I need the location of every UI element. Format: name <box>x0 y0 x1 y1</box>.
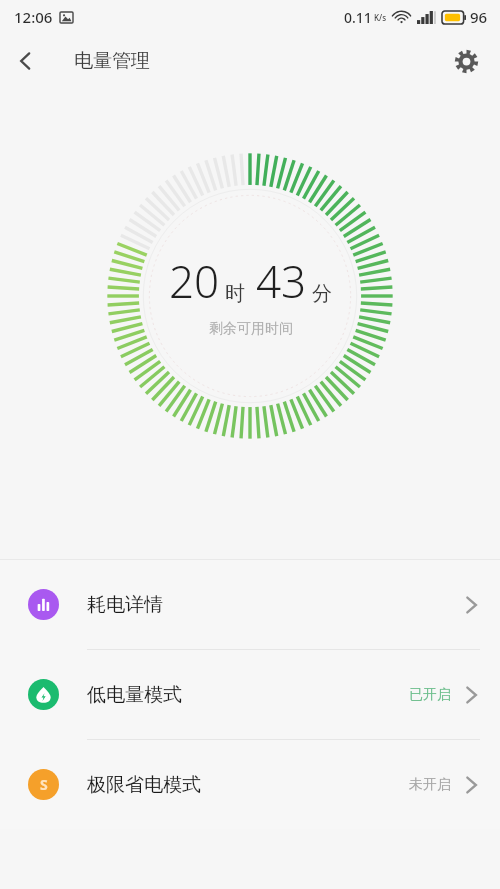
staticText: 未开启 <box>409 776 451 794</box>
staticText: 电量管理 <box>74 49 150 73</box>
button[interactable]: 耗电详情 <box>0 560 500 649</box>
staticText: 已开启 <box>409 686 451 704</box>
staticText: 剩余可用时间 <box>209 320 293 338</box>
staticText: 时 <box>225 281 245 306</box>
staticText: S <box>40 775 48 794</box>
staticText: K/s <box>374 12 387 23</box>
staticText: 耗电详情 <box>87 593 163 617</box>
staticText: 0.11 <box>344 8 372 27</box>
button[interactable]: Settings <box>442 37 490 85</box>
staticText: 分 <box>312 281 332 306</box>
staticText: 极限省电模式 <box>87 773 201 797</box>
staticText: 43 <box>256 251 307 311</box>
staticText: 12:06 <box>14 7 53 27</box>
button[interactable]: Back <box>0 35 52 87</box>
staticText: 96 <box>470 7 488 27</box>
staticText: 20 <box>169 251 220 311</box>
button[interactable]: 低电量模式 <box>0 650 500 739</box>
staticText: 低电量模式 <box>87 683 182 707</box>
button[interactable]: S <box>0 740 500 829</box>
